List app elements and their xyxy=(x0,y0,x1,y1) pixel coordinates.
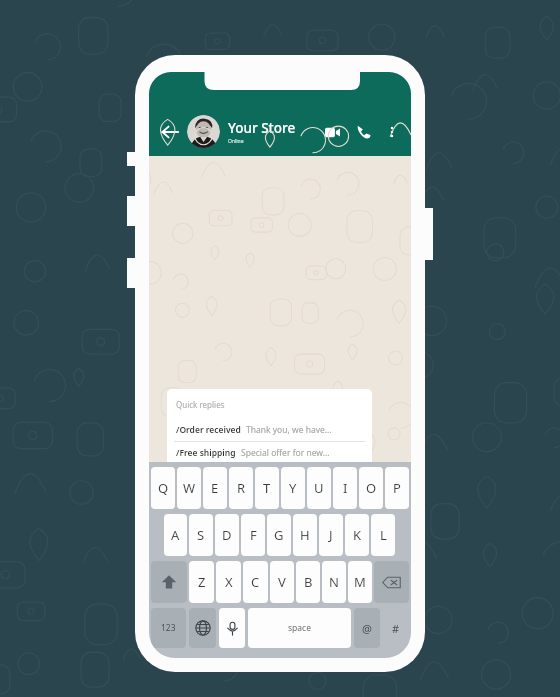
button[interactable]: E xyxy=(203,467,227,509)
button[interactable]: Z xyxy=(189,561,214,603)
button[interactable]: M xyxy=(348,561,372,603)
button[interactable]: Y xyxy=(281,467,305,509)
button[interactable]: R xyxy=(229,467,253,509)
button[interactable]: Q xyxy=(151,467,175,509)
button[interactable]: /15% off xyxy=(167,465,372,487)
staticText: H xyxy=(300,526,310,544)
button[interactable]: Emoji xyxy=(175,495,188,508)
staticText: Y xyxy=(289,479,297,497)
staticText: /Free shipping xyxy=(176,447,236,459)
staticText: R xyxy=(237,479,246,497)
staticText: G xyxy=(274,526,284,544)
button[interactable]: P xyxy=(385,467,409,509)
staticText: E xyxy=(211,479,219,497)
button[interactable]: A xyxy=(164,514,187,556)
staticText: K xyxy=(353,526,362,544)
staticText: I xyxy=(343,479,348,497)
button[interactable]: Shift xyxy=(151,561,187,603)
staticText: /15% off xyxy=(176,470,211,482)
button[interactable]: K xyxy=(345,514,369,556)
button[interactable]: N xyxy=(322,561,346,603)
button[interactable]: J xyxy=(319,514,343,556)
button[interactable]: C xyxy=(243,561,268,603)
staticText: @ xyxy=(362,621,372,636)
button[interactable]: Profile photo xyxy=(187,115,220,148)
button[interactable]: X xyxy=(216,561,241,603)
staticText: Your Store xyxy=(228,119,296,137)
staticText: N xyxy=(329,573,339,591)
staticText: D xyxy=(222,526,232,544)
button[interactable]: Back xyxy=(157,119,183,145)
button[interactable]: W xyxy=(177,467,201,509)
button[interactable]: Video call xyxy=(319,119,345,145)
button[interactable]: Backspace xyxy=(374,561,409,603)
button[interactable]: Change language xyxy=(189,608,216,648)
staticText: M xyxy=(354,573,366,591)
staticText: W xyxy=(183,479,196,497)
button[interactable]: Send xyxy=(373,505,410,542)
button[interactable]: space xyxy=(248,608,351,648)
staticText: Q xyxy=(158,479,169,497)
button[interactable]: Voice call xyxy=(351,119,377,145)
staticText: O xyxy=(366,479,377,497)
staticText: Online xyxy=(228,138,244,145)
staticText: U xyxy=(314,479,324,497)
button[interactable]: B xyxy=(296,561,320,603)
staticText: L xyxy=(380,526,387,544)
button[interactable]: U xyxy=(307,467,331,509)
button[interactable]: T xyxy=(255,467,279,509)
staticText: F xyxy=(250,526,257,544)
button[interactable]: @ xyxy=(354,608,380,648)
staticText: Quick replies xyxy=(176,399,225,410)
staticText: V xyxy=(278,573,286,591)
staticText: B xyxy=(304,573,313,591)
staticText: T xyxy=(263,479,271,497)
button[interactable]: O xyxy=(359,467,383,509)
button[interactable]: More options xyxy=(381,121,403,143)
button[interactable]: I xyxy=(333,467,357,509)
staticText: It's your lucky day, Take 15%... xyxy=(216,470,336,482)
staticText: A xyxy=(171,526,180,544)
staticText: Z xyxy=(198,573,206,591)
button[interactable]: G xyxy=(267,514,291,556)
button[interactable]: L xyxy=(371,514,395,556)
button[interactable]: 123 xyxy=(151,608,186,648)
staticText: Thank you, we have... xyxy=(246,424,332,436)
button[interactable]: /Free shipping xyxy=(167,442,372,464)
button[interactable]: /Order received xyxy=(167,419,372,441)
button[interactable]: # xyxy=(383,608,409,648)
staticText: Special offer for new... xyxy=(241,447,330,459)
button[interactable]: H xyxy=(293,514,317,556)
staticText: /Order received xyxy=(176,424,241,436)
staticText: space xyxy=(288,622,311,634)
button[interactable]: Voice input xyxy=(219,608,245,648)
button[interactable]: F xyxy=(241,514,265,556)
staticText: P xyxy=(393,479,401,497)
button[interactable]: D xyxy=(215,514,239,556)
staticText: 123 xyxy=(161,622,176,634)
staticText: C xyxy=(251,573,260,591)
staticText: S xyxy=(197,526,205,544)
button[interactable]: V xyxy=(270,561,294,603)
button[interactable]: S xyxy=(189,514,213,556)
staticText: # xyxy=(392,621,400,636)
staticText: X xyxy=(225,573,233,591)
staticText: J xyxy=(329,526,333,544)
button[interactable]: Attach xyxy=(350,494,364,508)
